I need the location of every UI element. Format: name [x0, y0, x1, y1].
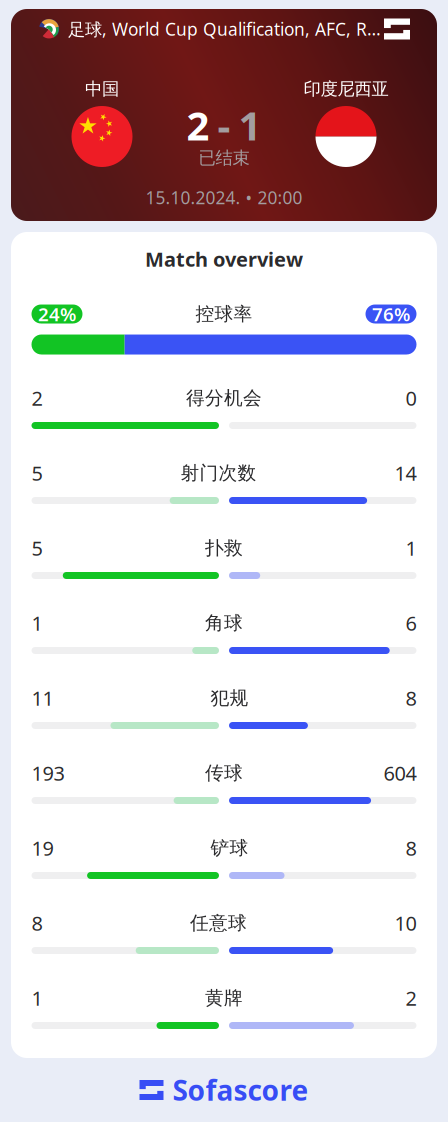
- staticText: 5: [31, 460, 42, 486]
- button[interactable]: Sofascore: [11, 1058, 437, 1122]
- button[interactable]: 5: [11, 453, 437, 528]
- button[interactable]: 11: [11, 678, 437, 753]
- staticText: 0: [405, 385, 416, 411]
- staticText: 8: [405, 835, 416, 861]
- staticText: 1: [238, 98, 261, 151]
- staticText: 2: [31, 385, 42, 411]
- staticText: 扑救: [205, 536, 243, 559]
- staticText: 76%: [372, 302, 410, 326]
- staticText: 2: [186, 98, 209, 151]
- button[interactable]: 足球, World Cup Qualification, AFC, Roun..…: [11, 9, 437, 49]
- staticText: 角球: [205, 611, 243, 634]
- staticText: 中国: [85, 78, 119, 100]
- staticText: 6: [405, 610, 416, 636]
- staticText: 已结束: [198, 147, 249, 169]
- staticText: 15.10.2024. • 20:00: [145, 186, 302, 209]
- staticText: 8: [31, 910, 42, 936]
- staticText: 10: [394, 910, 416, 936]
- button[interactable]: 1: [11, 978, 437, 1053]
- staticText: 1: [31, 610, 42, 636]
- staticText: 24%: [38, 302, 76, 326]
- staticText: 193: [31, 760, 64, 786]
- staticText: 射门次数: [180, 461, 256, 484]
- button[interactable]: 19: [11, 828, 437, 903]
- staticText: 604: [383, 760, 416, 786]
- staticText: 得分机会: [186, 386, 262, 409]
- staticText: Sofascore: [172, 1071, 308, 1109]
- staticText: 印度尼西亚: [303, 78, 388, 100]
- staticText: 1: [31, 985, 42, 1011]
- button[interactable]: 1: [11, 603, 437, 678]
- staticText: 2: [405, 985, 416, 1011]
- staticText: 19: [31, 835, 53, 861]
- staticText: 11: [31, 685, 53, 711]
- staticText: 8: [405, 685, 416, 711]
- staticText: 5: [31, 535, 42, 561]
- staticText: 传球: [205, 761, 243, 784]
- staticText: 犯规: [210, 686, 248, 709]
- staticText: 铲球: [210, 836, 248, 859]
- staticText: 1: [405, 535, 416, 561]
- staticText: 足球, World Cup Qualification, AFC, Roun..…: [68, 17, 384, 41]
- staticText: 黄牌: [205, 986, 243, 1009]
- staticText: 任意球: [190, 911, 247, 934]
- button[interactable]: 8: [11, 903, 437, 978]
- staticText: Match overview: [145, 246, 303, 272]
- button[interactable]: 193: [11, 753, 437, 828]
- staticText: 控球率: [195, 302, 252, 325]
- button[interactable]: 2: [11, 378, 437, 453]
- staticText: 14: [394, 460, 416, 486]
- staticText: -: [217, 98, 230, 151]
- button[interactable]: 5: [11, 528, 437, 603]
